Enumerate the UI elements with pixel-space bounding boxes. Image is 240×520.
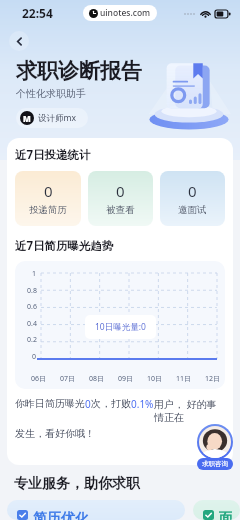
button[interactable]: Back — [9, 31, 29, 51]
staticText: 11日 — [176, 374, 192, 384]
staticText: 被查看 — [106, 204, 135, 216]
staticText: 10日 — [147, 374, 163, 384]
staticText: 近7日投递统计 — [15, 147, 91, 163]
button[interactable]: 0 — [160, 171, 225, 226]
staticText: 求职诊断报告 — [16, 58, 142, 84]
staticText: 0.4 — [27, 319, 37, 329]
button[interactable]: 简历优化 — [7, 500, 185, 520]
staticText: uinotes.com — [100, 7, 151, 19]
staticText: 面霸养成 — [219, 510, 232, 520]
staticText: 次，打败 — [91, 397, 131, 410]
staticText: 0 — [85, 397, 91, 411]
staticText: 08日 — [89, 374, 105, 384]
staticText: 0 — [116, 181, 125, 201]
staticText: 设计师mx — [38, 112, 76, 124]
staticText: 0.6 — [27, 302, 37, 312]
button[interactable]: 面霸养成 — [193, 500, 240, 520]
staticText: 10日曝光量:0 — [95, 321, 146, 333]
button[interactable]: 求职咨询 — [194, 424, 236, 470]
staticText: 投递简历 — [29, 204, 67, 216]
staticText: 09日 — [118, 374, 134, 384]
button[interactable]: 0 — [15, 171, 81, 226]
staticText: 个性化求职助手 — [16, 87, 86, 100]
staticText: M — [23, 113, 31, 124]
staticText: 0 — [32, 352, 37, 362]
staticText: 邀面试 — [178, 204, 207, 216]
staticText: 0.2 — [27, 335, 37, 345]
staticText: 0 — [44, 181, 53, 201]
staticText: 简历优化 — [33, 510, 89, 520]
staticText: 0.1% — [131, 397, 154, 411]
staticText: 07日 — [60, 374, 76, 384]
staticText: 0 — [188, 181, 197, 201]
staticText: 专业服务，助你求职 — [14, 475, 140, 493]
staticText: 1 — [32, 269, 37, 279]
staticText: 22:54 — [22, 5, 53, 21]
staticText: 用户， 好的事情正在 — [154, 397, 225, 424]
button[interactable]: M — [20, 111, 76, 125]
staticText: 12日 — [205, 374, 221, 384]
staticText: 近7日简历曝光趋势 — [15, 238, 114, 254]
button[interactable]: 0 — [88, 171, 153, 226]
staticText: 06日 — [31, 374, 47, 384]
staticText: 求职咨询 — [202, 460, 228, 468]
staticText: 你昨日简历曝光 — [15, 397, 85, 410]
staticText: 0.8 — [27, 286, 37, 296]
staticText: 发生，看好你哦！ — [15, 427, 95, 440]
